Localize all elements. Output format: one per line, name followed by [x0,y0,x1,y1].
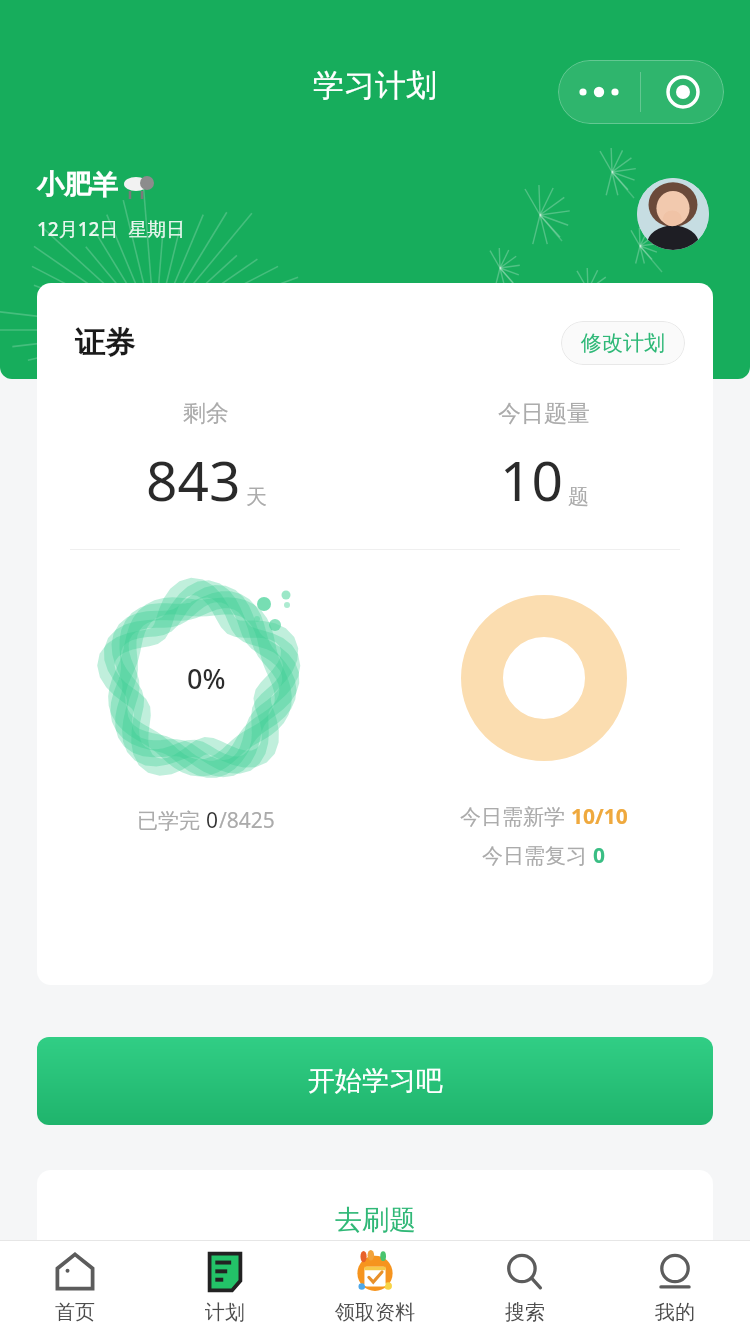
staticText: 开始学习吧 [308,1064,443,1098]
staticText: 去刷题 [335,1203,416,1237]
button[interactable]: 我的 [600,1241,750,1334]
staticText: 小肥羊 [37,168,118,202]
staticText: 12月12日 星期日 [37,216,186,242]
button[interactable]: 开始学习吧 [37,1037,713,1125]
staticText: 已学完 [137,806,206,835]
staticText: 843 [146,442,241,517]
staticText: 证券 [75,324,135,362]
button[interactable]: 首页 [0,1241,150,1334]
staticText: 领取资料 [335,1300,415,1325]
button[interactable]: 计划 [150,1241,300,1334]
button[interactable]: 去刷题 [37,1170,713,1290]
staticText: 0 [593,841,606,870]
staticText: 10/10 [571,802,628,831]
staticText: 首页 [55,1300,95,1325]
button[interactable]: More [558,60,640,124]
staticText: 学习计划 [313,66,437,105]
button[interactable]: 搜索 [450,1241,600,1334]
staticText: 今日需复习 [482,841,593,870]
staticText: 搜索 [505,1300,545,1325]
staticText: 计划 [205,1300,245,1325]
staticText: 修改计划 [581,330,665,356]
staticText: 0% [187,660,226,697]
staticText: 我的 [655,1300,695,1325]
staticText: 10 [500,442,563,517]
staticText: 天 [246,484,267,510]
staticText: 0 [206,806,219,835]
staticText: 今日需新学 [460,802,571,831]
staticText: /8425 [219,806,275,835]
button[interactable]: Close [641,60,724,124]
button[interactable]: 修改计划 [561,321,685,365]
staticText: 今日题量 [498,399,590,428]
button[interactable]: 领取资料 [300,1241,450,1334]
staticText: 题 [568,484,589,510]
button[interactable]: Profile [637,178,709,250]
staticText: 剩余 [183,399,229,428]
